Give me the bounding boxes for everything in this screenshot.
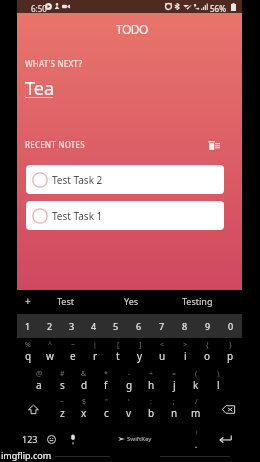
staticText: k — [193, 378, 199, 392]
staticText: ! — [196, 429, 198, 437]
staticText: / — [195, 397, 198, 407]
button[interactable]: 1 — [17, 314, 39, 338]
button[interactable]: 3 — [61, 314, 83, 338]
staticText: | — [93, 340, 97, 350]
staticText: [ — [117, 340, 120, 350]
button[interactable]: ; — [163, 395, 185, 424]
staticText: r — [93, 349, 98, 363]
button[interactable]: [ — [107, 338, 129, 367]
button[interactable]: Enter — [213, 426, 237, 452]
button[interactable]: ( — [185, 367, 207, 396]
button[interactable]: & — [73, 367, 95, 396]
staticText: % — [25, 340, 31, 350]
staticText: f — [104, 378, 108, 392]
button[interactable]: Add to dictionary — [20, 292, 36, 310]
staticText: i — [184, 349, 187, 363]
button[interactable]: ] — [129, 338, 151, 367]
staticText: 123 — [22, 433, 38, 445]
staticText: TODO — [116, 21, 148, 35]
button[interactable]: Test Task 2 — [26, 165, 224, 194]
button[interactable]: = — [163, 367, 185, 396]
button[interactable]: Shift — [22, 395, 44, 423]
button[interactable]: } — [219, 338, 241, 367]
staticText: WHAT'S NEXT? — [25, 58, 83, 69]
button[interactable]: Emoji — [41, 426, 61, 452]
button[interactable]: ' — [118, 395, 140, 424]
staticText: - — [128, 369, 131, 379]
staticText: z — [60, 406, 65, 420]
button[interactable]: : — [140, 395, 162, 424]
staticText: w — [46, 349, 54, 363]
button[interactable]: ) — [207, 367, 229, 396]
staticText: 8 — [182, 320, 188, 332]
button[interactable]: 0 — [219, 314, 242, 338]
staticText: . — [195, 439, 198, 450]
button[interactable]: | — [84, 338, 106, 367]
button[interactable]: Delete all notes — [202, 133, 226, 157]
button[interactable]: { — [196, 338, 218, 367]
staticText: Test Task 2 — [52, 173, 103, 187]
staticText: 6:50 — [31, 3, 47, 14]
staticText: 7 — [159, 320, 165, 332]
button[interactable]: ~ — [62, 338, 84, 367]
staticText: Tea — [25, 76, 54, 101]
staticText: h — [148, 378, 155, 392]
staticText: 6 — [136, 320, 142, 332]
button[interactable]: @ — [28, 367, 50, 396]
staticText: 1 — [25, 320, 31, 332]
staticText: : — [150, 397, 152, 407]
button[interactable]: Yes — [103, 291, 159, 311]
button[interactable]: ^ — [39, 338, 61, 367]
button[interactable]: 123 — [19, 426, 41, 452]
button[interactable]: Space — [85, 426, 185, 452]
staticText: t — [116, 349, 120, 363]
staticText: 2 — [47, 320, 53, 332]
button[interactable]: ! — [185, 426, 207, 452]
staticText: ^ — [48, 340, 53, 350]
staticText: > — [183, 340, 188, 350]
button[interactable]: 5 — [105, 314, 127, 338]
staticText: # — [60, 369, 65, 379]
staticText: s — [60, 378, 65, 392]
staticText: x — [81, 406, 87, 420]
button[interactable]: 2 — [39, 314, 61, 338]
staticText: @ — [36, 369, 43, 379]
button[interactable]: 4 — [83, 314, 105, 338]
button[interactable]: ~ — [51, 395, 73, 424]
button[interactable]: > — [174, 338, 196, 367]
staticText: ~ — [60, 397, 65, 407]
staticText: & — [81, 369, 87, 379]
button[interactable]: - — [118, 367, 140, 396]
button[interactable]: Backspace — [216, 395, 240, 423]
button[interactable]: % — [17, 338, 39, 367]
staticText: 4 — [91, 320, 97, 332]
staticText: o — [204, 349, 211, 363]
button[interactable]: * — [95, 367, 117, 396]
button[interactable]: # — [51, 367, 73, 396]
staticText: y — [137, 349, 143, 363]
staticText: q — [25, 349, 32, 363]
button[interactable]: 7 — [150, 314, 173, 338]
staticText: + — [25, 294, 31, 308]
button[interactable]: 8 — [173, 314, 196, 338]
staticText: Testing — [182, 295, 213, 307]
staticText: j — [173, 378, 176, 392]
button[interactable]: < — [151, 338, 173, 367]
button[interactable]: 9 — [196, 314, 219, 338]
button[interactable]: " — [95, 395, 117, 424]
button[interactable]: / — [185, 395, 207, 424]
staticText: 56% — [210, 3, 226, 14]
button[interactable]: $ — [73, 395, 95, 424]
staticText: " — [105, 397, 108, 407]
staticText: 3 — [69, 320, 75, 332]
button[interactable]: + — [140, 367, 162, 396]
button[interactable]: Testing — [169, 291, 225, 311]
staticText: e — [70, 349, 76, 363]
button[interactable]: 6 — [127, 314, 150, 338]
button[interactable]: Test — [38, 291, 94, 311]
button[interactable]: Voice input — [63, 426, 83, 452]
staticText: m — [191, 406, 201, 420]
button[interactable]: Test Task 1 — [26, 201, 224, 230]
staticText: 5 — [113, 320, 119, 332]
staticText: { — [206, 340, 209, 350]
